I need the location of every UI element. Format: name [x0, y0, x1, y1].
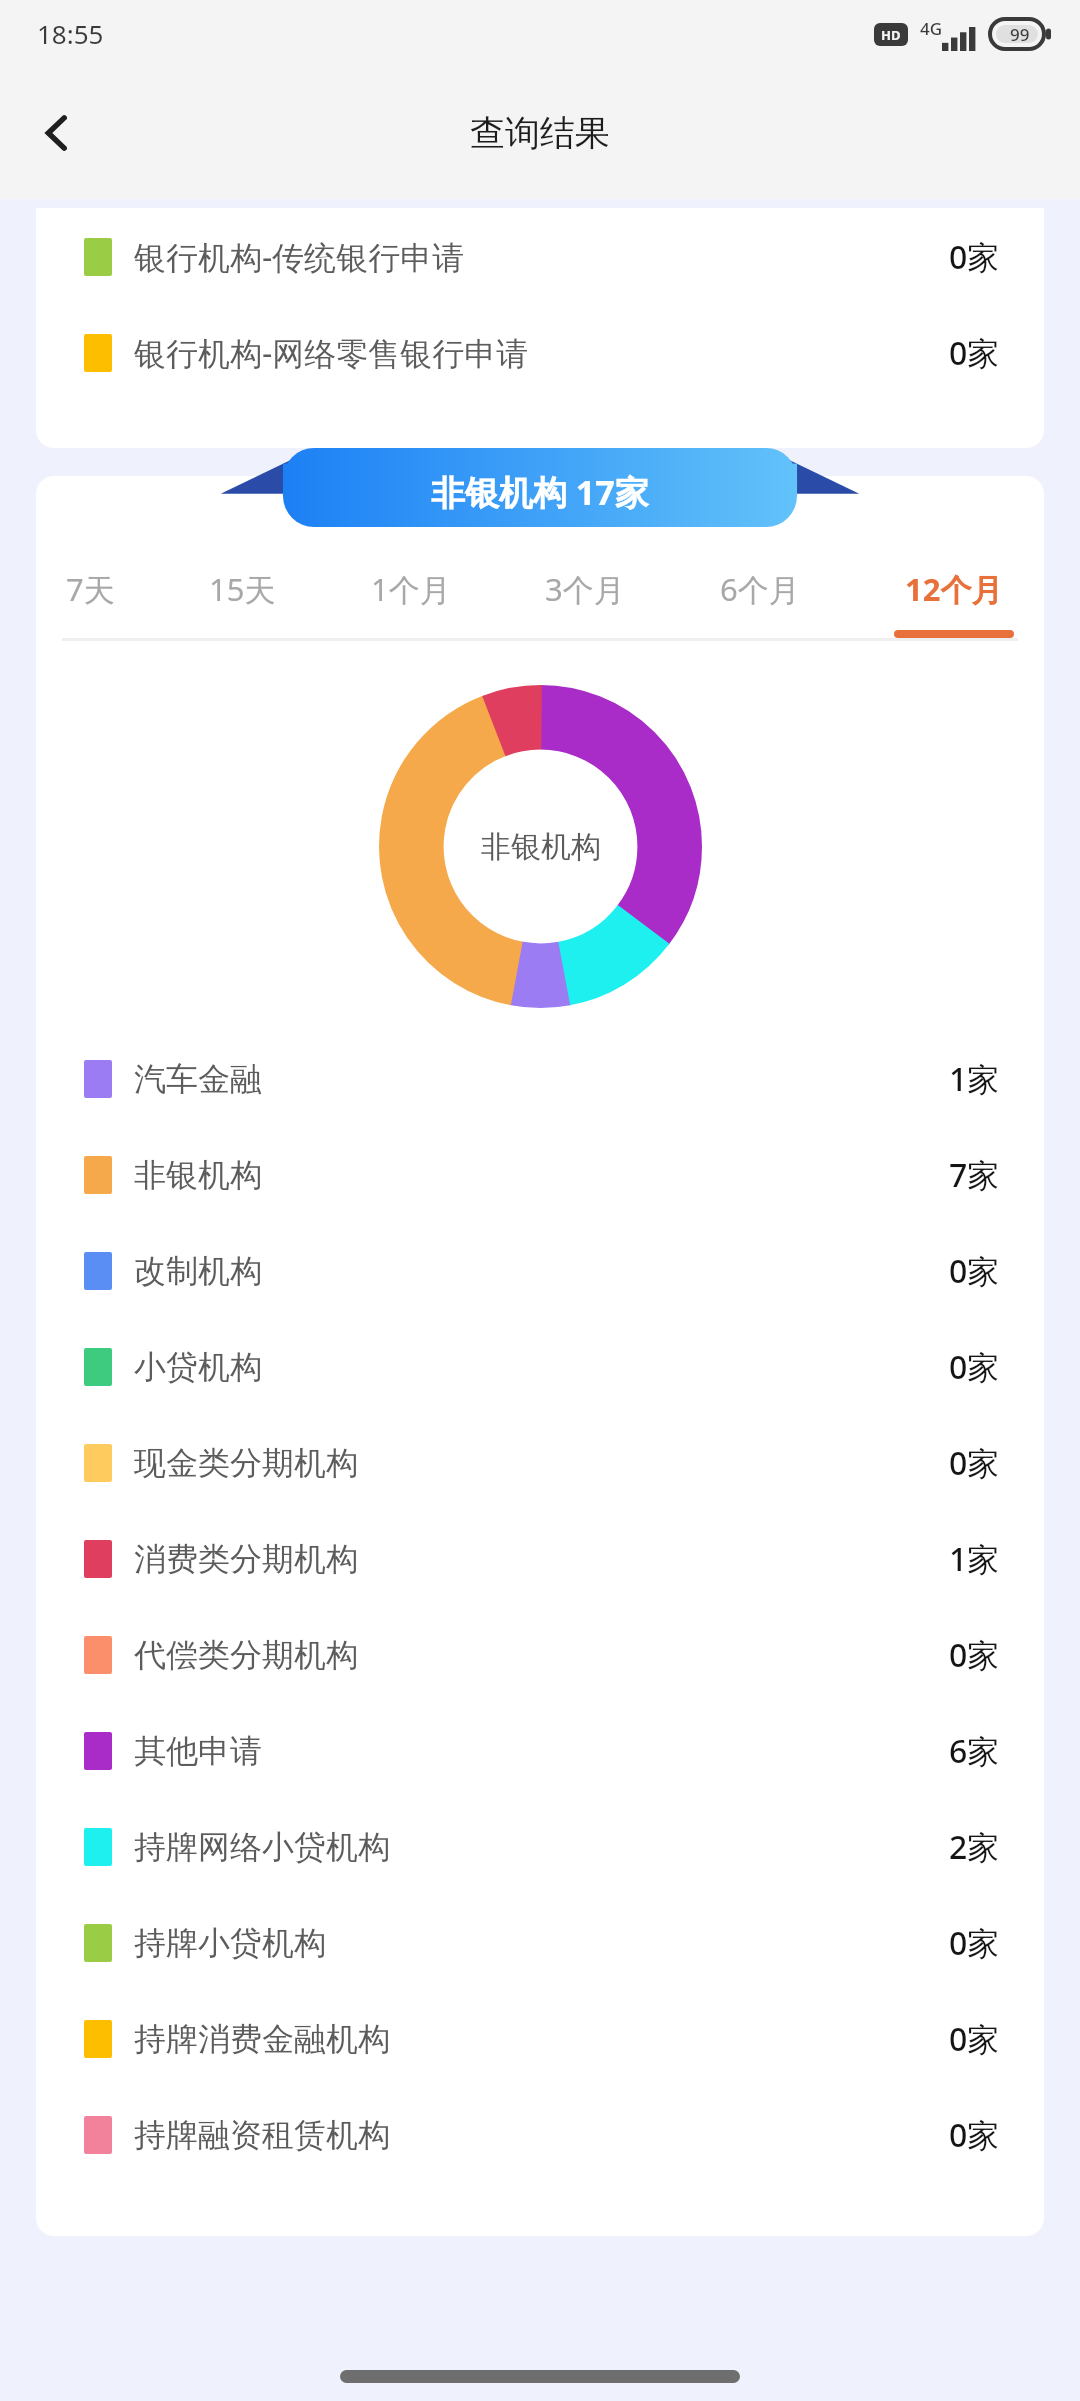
staticText: 1家: [949, 1057, 1000, 1101]
button[interactable]: 持牌小贷机构: [36, 1912, 1044, 1974]
staticText: 非银机构: [481, 828, 601, 866]
staticText: 12个月: [905, 568, 1003, 610]
staticText: 消费类分期机构: [134, 1539, 949, 1579]
button[interactable]: 7天: [62, 568, 119, 638]
button[interactable]: 现金类分期机构: [36, 1432, 1044, 1494]
button[interactable]: 6个月: [716, 568, 804, 638]
staticText: 0家: [949, 1921, 1000, 1965]
staticText: 7天: [66, 568, 115, 610]
staticText: 非银机构 17家: [431, 469, 649, 515]
button[interactable]: Back: [20, 96, 94, 170]
staticText: 15天: [209, 568, 276, 610]
staticText: 3个月: [545, 568, 625, 610]
staticText: 持牌消费金融机构: [134, 2019, 949, 2059]
staticText: 1家: [949, 1537, 1000, 1581]
staticText: 银行机构-网络零售银行申请: [134, 331, 949, 375]
staticText: 其他申请: [134, 1731, 949, 1771]
button[interactable]: 非银机构: [36, 1144, 1044, 1206]
staticText: 4G: [920, 17, 943, 40]
staticText: 2家: [949, 1825, 1000, 1869]
staticText: 0家: [949, 331, 1000, 375]
staticText: 1个月: [371, 568, 451, 610]
staticText: 汽车金融: [134, 1059, 949, 1099]
button[interactable]: 改制机构: [36, 1240, 1044, 1302]
staticText: 7家: [949, 1153, 1000, 1197]
staticText: 改制机构: [134, 1251, 949, 1291]
button[interactable]: 代偿类分期机构: [36, 1624, 1044, 1686]
button[interactable]: 3个月: [541, 568, 629, 638]
staticText: 0家: [949, 1441, 1000, 1485]
button[interactable]: 银行机构-网络零售银行申请: [36, 322, 1044, 384]
staticText: 0家: [949, 2017, 1000, 2061]
staticText: 0家: [949, 1345, 1000, 1389]
staticText: 持牌小贷机构: [134, 1923, 949, 1963]
button[interactable]: 其他申请: [36, 1720, 1044, 1782]
staticText: 查询结果: [470, 111, 610, 155]
staticText: 非银机构: [134, 1155, 949, 1195]
button[interactable]: 持牌网络小贷机构: [36, 1816, 1044, 1878]
button[interactable]: 小贷机构: [36, 1336, 1044, 1398]
staticText: 6个月: [720, 568, 800, 610]
staticText: 0家: [949, 1249, 1000, 1293]
button[interactable]: 汽车金融: [36, 1048, 1044, 1110]
staticText: 18:55: [37, 16, 104, 51]
button[interactable]: 银行机构-传统银行申请: [36, 226, 1044, 288]
button[interactable]: 1个月: [367, 568, 455, 638]
staticText: 99: [1010, 23, 1030, 46]
staticText: 0家: [949, 2113, 1000, 2157]
staticText: 银行机构-传统银行申请: [134, 235, 949, 279]
button[interactable]: 15天: [205, 568, 280, 638]
staticText: 持牌网络小贷机构: [134, 1827, 949, 1867]
button[interactable]: 持牌消费金融机构: [36, 2008, 1044, 2070]
staticText: 0家: [949, 1633, 1000, 1677]
button[interactable]: 消费类分期机构: [36, 1528, 1044, 1590]
staticText: 持牌融资租赁机构: [134, 2115, 949, 2155]
staticText: 小贷机构: [134, 1347, 949, 1387]
staticText: 0家: [949, 235, 1000, 279]
staticText: 代偿类分期机构: [134, 1635, 949, 1675]
staticText: HD: [881, 26, 901, 44]
button[interactable]: 12个月: [890, 568, 1018, 638]
staticText: 现金类分期机构: [134, 1443, 949, 1483]
button[interactable]: 持牌融资租赁机构: [36, 2104, 1044, 2166]
staticText: 6家: [949, 1729, 1000, 1773]
